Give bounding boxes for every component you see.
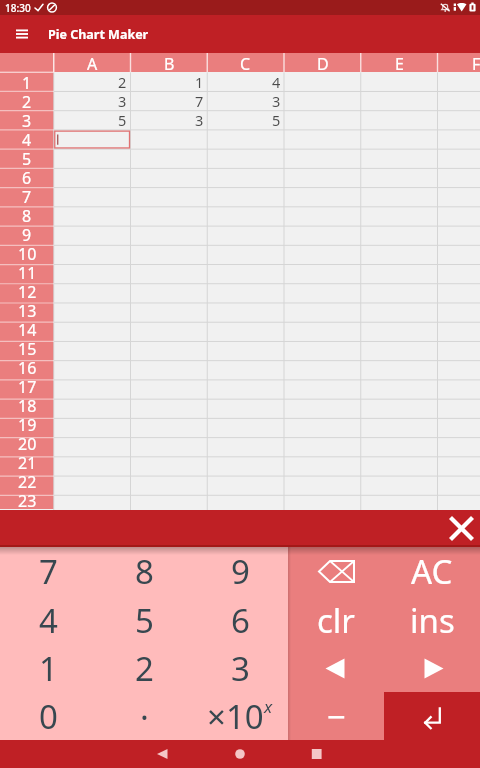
button[interactable]: [285, 471, 362, 490]
button[interactable]: [131, 262, 208, 281]
button[interactable]: F: [438, 53, 480, 72]
button[interactable]: [439, 148, 480, 167]
button[interactable]: [285, 262, 362, 281]
button[interactable]: 10: [0, 243, 54, 262]
button[interactable]: 5: [208, 110, 285, 129]
button[interactable]: 9: [0, 224, 54, 243]
button[interactable]: ·: [96, 692, 192, 740]
button[interactable]: 13: [0, 300, 54, 319]
button[interactable]: [208, 205, 285, 224]
button[interactable]: [439, 357, 480, 376]
button[interactable]: 1: [0, 72, 54, 91]
button[interactable]: [362, 167, 439, 186]
button[interactable]: [208, 414, 285, 433]
button[interactable]: [131, 357, 208, 376]
button[interactable]: [439, 110, 480, 129]
button[interactable]: 3: [131, 110, 208, 129]
button[interactable]: [131, 319, 208, 338]
button[interactable]: [208, 281, 285, 300]
button[interactable]: [285, 281, 362, 300]
button[interactable]: [285, 338, 362, 357]
button[interactable]: [131, 376, 208, 395]
button[interactable]: 11: [0, 262, 54, 281]
button[interactable]: 4: [0, 596, 96, 644]
button[interactable]: [208, 262, 285, 281]
button[interactable]: [362, 376, 439, 395]
button[interactable]: [362, 205, 439, 224]
button[interactable]: D: [284, 53, 361, 72]
button[interactable]: [54, 224, 131, 243]
button[interactable]: [208, 167, 285, 186]
button[interactable]: 3: [54, 91, 131, 110]
button[interactable]: [131, 300, 208, 319]
button[interactable]: [208, 452, 285, 471]
button[interactable]: [285, 186, 362, 205]
button[interactable]: [362, 186, 439, 205]
button[interactable]: 2: [54, 72, 131, 91]
button[interactable]: 6: [0, 167, 54, 186]
button[interactable]: [208, 490, 285, 509]
button[interactable]: [285, 148, 362, 167]
button[interactable]: 5: [0, 148, 54, 167]
button[interactable]: 22: [0, 471, 54, 490]
button[interactable]: [131, 148, 208, 167]
button[interactable]: 5: [54, 110, 131, 129]
button[interactable]: 5: [96, 596, 192, 644]
button[interactable]: [54, 357, 131, 376]
button[interactable]: AC: [384, 547, 480, 596]
button[interactable]: 12: [0, 281, 54, 300]
button[interactable]: [439, 471, 480, 490]
button[interactable]: [131, 167, 208, 186]
button[interactable]: ins: [384, 596, 480, 644]
button[interactable]: [362, 357, 439, 376]
button[interactable]: [362, 224, 439, 243]
button[interactable]: [54, 129, 131, 148]
button[interactable]: [285, 243, 362, 262]
button[interactable]: [208, 338, 285, 357]
button[interactable]: 7: [0, 547, 96, 596]
button[interactable]: [285, 205, 362, 224]
button[interactable]: [54, 319, 131, 338]
button[interactable]: [439, 262, 480, 281]
button[interactable]: [208, 129, 285, 148]
button[interactable]: 4: [208, 72, 285, 91]
button[interactable]: [285, 300, 362, 319]
button[interactable]: [362, 262, 439, 281]
button[interactable]: [131, 281, 208, 300]
button[interactable]: [54, 452, 131, 471]
button[interactable]: 2: [96, 644, 192, 692]
button[interactable]: [439, 281, 480, 300]
button[interactable]: [54, 414, 131, 433]
button[interactable]: [439, 129, 480, 148]
button[interactable]: [439, 414, 480, 433]
button[interactable]: −: [288, 692, 384, 740]
button[interactable]: 18: [0, 395, 54, 414]
button[interactable]: [54, 243, 131, 262]
button[interactable]: [285, 376, 362, 395]
button[interactable]: [439, 300, 480, 319]
button[interactable]: 15: [0, 338, 54, 357]
button[interactable]: Navigation menu: [0, 15, 43, 53]
button[interactable]: [362, 148, 439, 167]
button[interactable]: [439, 205, 480, 224]
button[interactable]: [439, 186, 480, 205]
button[interactable]: [131, 433, 208, 452]
button[interactable]: [54, 300, 131, 319]
button[interactable]: [362, 414, 439, 433]
button[interactable]: [208, 243, 285, 262]
button[interactable]: 23: [0, 490, 54, 509]
button[interactable]: [285, 395, 362, 414]
button[interactable]: 14: [0, 319, 54, 338]
button[interactable]: 2: [0, 91, 54, 110]
button[interactable]: [54, 338, 131, 357]
button[interactable]: [439, 452, 480, 471]
button[interactable]: [285, 129, 362, 148]
button[interactable]: 1: [131, 72, 208, 91]
button[interactable]: [285, 414, 362, 433]
button[interactable]: 20: [0, 433, 54, 452]
button[interactable]: [54, 490, 131, 509]
button[interactable]: 1: [0, 644, 96, 692]
button[interactable]: Move left: [288, 644, 384, 692]
